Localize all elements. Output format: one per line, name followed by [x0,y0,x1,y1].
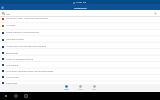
button[interactable]: Hjelpeside [0,80,160,84]
button[interactable]: Arkivdeling [0,62,160,68]
staticText: 13:42 4G [76,1,87,4]
button[interactable]: Arkiv [73,85,87,91]
button[interactable]: Varsel om ulike - regionale dokumenter [0,16,160,22]
staticText: Hjelpeside [6,82,18,84]
staticText: Arkiv [78,88,83,91]
staticText: Arkivdeling [6,64,19,67]
staticText: Bestillinger [6,52,19,55]
staticText: Hjem [64,88,69,91]
staticText: Saker og saksbehandlere [6,58,34,61]
button[interactable]: Søk [0,10,160,16]
staticText: Mediasal tilvekst [6,38,24,41]
staticText: Fysisk lokasjon og arkivplasser [6,31,39,34]
button[interactable]: Nyttig hjelp og dokumentfortegnelse [0,43,160,50]
button[interactable]: Bestillinger [0,50,160,56]
staticText: Varsel om ulike - regionale dokumenter [6,17,49,20]
button[interactable]: Home [14,94,18,98]
button[interactable]: Fysisk lokasjon og arkivplasser [0,29,160,36]
button[interactable]: Clear search [154,12,157,15]
button[interactable]: Hjem [59,85,73,91]
staticText: Arkiv informasjonsmodell og kartplanlegg… [6,70,54,73]
staticText: Arkivrutiner [6,76,19,79]
button[interactable]: Arkivrutiner [0,74,160,80]
button[interactable]: Saker og saksbehandlere [0,56,160,62]
button[interactable]: Open navigation menu [1,6,4,9]
button[interactable]: Recent apps [24,94,28,98]
button[interactable]: Mer [87,85,101,91]
button[interactable]: Arkivsøk [0,22,160,29]
staticText: Mer [92,88,96,91]
staticText: Søk [6,12,11,15]
button[interactable]: Arkiv informasjonsmodell og kartplanlegg… [0,68,160,74]
button[interactable]: Back [4,94,8,98]
button[interactable]: Mediasal tilvekst [0,36,160,43]
staticText: Nyttig hjelp og dokumentfortegnelse [6,45,46,48]
staticText: Arkivsøk [6,24,16,27]
staticText: Arkivportal [74,6,87,9]
